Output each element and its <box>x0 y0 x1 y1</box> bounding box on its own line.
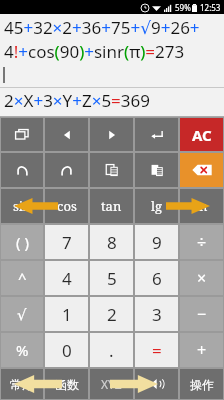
button[interactable]: × <box>180 261 223 295</box>
staticText: 2 <box>107 303 117 326</box>
staticText: 1 <box>62 303 72 326</box>
staticText: 8 <box>107 231 117 254</box>
button[interactable]: Redo <box>45 153 88 187</box>
staticText: 4 <box>62 267 72 290</box>
button[interactable]: 操作 <box>180 369 223 399</box>
button[interactable]: cos <box>45 189 88 223</box>
button[interactable]: . <box>90 333 133 367</box>
staticText: 操作 <box>190 377 214 392</box>
button[interactable]: 8 <box>90 225 133 259</box>
button[interactable]: Move right <box>90 118 133 151</box>
button[interactable]: 3 <box>135 297 178 331</box>
staticText: ÷ <box>197 231 207 253</box>
button[interactable]: √ <box>1 297 43 331</box>
button[interactable]: 2 <box>90 297 133 331</box>
button[interactable]: 6 <box>135 261 178 295</box>
button[interactable]: 1 <box>45 297 88 331</box>
button[interactable]: Copy <box>90 153 133 187</box>
button[interactable]: tan <box>90 189 133 223</box>
button[interactable]: + <box>180 333 223 367</box>
staticText: . <box>109 339 114 362</box>
staticText: = <box>152 339 162 362</box>
staticText: × <box>197 267 207 289</box>
staticText: tan <box>101 197 122 215</box>
button[interactable]: sin <box>1 189 43 223</box>
staticText: ln <box>195 197 208 215</box>
staticText: 45+32×2+36+75+√9+26+ <box>4 16 200 39</box>
button[interactable]: 9 <box>135 225 178 259</box>
staticText: 12:53 <box>200 2 221 13</box>
button[interactable]: ( ) <box>1 225 43 259</box>
button[interactable]: = <box>135 333 178 367</box>
staticText: sin <box>13 197 32 215</box>
staticText: 59% <box>175 2 191 13</box>
staticText: lg <box>151 197 163 215</box>
button[interactable]: 5 <box>90 261 133 295</box>
staticText: 4!+cos(90)+sinr(π)=273 <box>4 40 185 63</box>
button[interactable]: 7 <box>45 225 88 259</box>
button[interactable]: ÷ <box>180 225 223 259</box>
button[interactable]: 0 <box>45 333 88 367</box>
button[interactable]: 常用 <box>1 369 43 399</box>
button[interactable]: Backspace <box>180 153 223 187</box>
staticText: 7 <box>62 231 72 254</box>
button[interactable]: 函数 <box>45 369 88 399</box>
staticText: 0 <box>62 339 72 362</box>
button[interactable]: Sound <box>135 369 178 399</box>
staticText: ^ <box>18 268 27 288</box>
staticText: 2×X+3×Y+Z×5=369 <box>4 89 150 112</box>
staticText: AC <box>192 125 212 145</box>
button[interactable]: XYZ <box>90 369 133 399</box>
staticText: √ <box>17 306 27 323</box>
button[interactable]: 4 <box>45 261 88 295</box>
button[interactable]: AC <box>180 118 223 151</box>
button[interactable]: Paste <box>135 153 178 187</box>
button[interactable]: ln <box>180 189 223 223</box>
staticText: + <box>197 339 207 361</box>
button[interactable]: ^ <box>1 261 43 295</box>
button[interactable]: Switch window <box>1 118 43 151</box>
button[interactable]: − <box>180 297 223 331</box>
staticText: % <box>16 340 29 360</box>
staticText: 6 <box>152 267 162 290</box>
staticText: XYZ <box>101 376 122 392</box>
staticText: − <box>197 303 207 325</box>
staticText: cos <box>57 197 77 215</box>
staticText: 常用 <box>10 377 34 392</box>
button[interactable]: Move left <box>45 118 88 151</box>
staticText: 函数 <box>55 377 79 392</box>
staticText: 9 <box>152 231 162 254</box>
button[interactable]: % <box>1 333 43 367</box>
button[interactable]: Undo <box>1 153 43 187</box>
staticText: 3 <box>152 303 162 326</box>
button[interactable]: lg <box>135 189 178 223</box>
staticText: ( ) <box>16 232 29 252</box>
button[interactable]: Enter <box>135 118 178 151</box>
staticText: 5 <box>107 267 117 290</box>
